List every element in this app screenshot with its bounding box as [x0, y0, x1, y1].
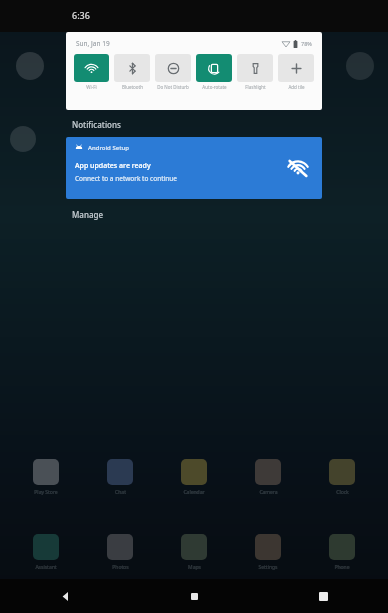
button[interactable]: Recent apps [259, 579, 388, 613]
button[interactable]: Android Setup [66, 137, 322, 199]
button[interactable]: Maps [170, 534, 218, 571]
button[interactable]: Phone [318, 534, 366, 571]
staticText: Assistant [35, 564, 57, 571]
staticText: Phone [334, 564, 350, 571]
button[interactable]: Chat [96, 459, 144, 496]
button[interactable]: Bluetooth [114, 54, 150, 90]
staticText: Chat [115, 489, 126, 496]
button[interactable]: Home [130, 579, 259, 613]
button[interactable]: Flashlight [237, 54, 273, 90]
staticText: Bluetooth [122, 84, 143, 90]
staticText: Calendar [183, 489, 205, 496]
staticText: Notifications [72, 119, 121, 130]
staticText: App updates are ready [75, 161, 151, 171]
staticText: Wi-Fi [86, 84, 97, 90]
staticText: Add tile [288, 84, 305, 90]
button[interactable]: Camera [244, 459, 292, 496]
staticText: Auto-rotate [202, 84, 227, 90]
staticText: Clock [336, 489, 349, 496]
staticText: Do Not Disturb [157, 84, 189, 90]
staticText: Flashlight [245, 84, 266, 90]
staticText: Maps [188, 564, 201, 571]
button[interactable]: Settings [244, 534, 292, 571]
staticText: Settings [258, 564, 278, 571]
button[interactable]: Back [0, 579, 130, 613]
button[interactable]: Do Not Disturb [155, 54, 191, 90]
button[interactable]: Photos [96, 534, 144, 571]
staticText: 6:36 [72, 9, 90, 21]
staticText: Play Store [34, 489, 58, 496]
button[interactable]: Clock [318, 459, 366, 496]
staticText: Photos [112, 564, 129, 571]
staticText: 78% [301, 40, 312, 47]
button[interactable]: Assistant [22, 534, 70, 571]
button[interactable]: Add tile [278, 54, 314, 90]
staticText: Android Setup [88, 144, 129, 152]
button[interactable]: Wi-Fi [74, 54, 109, 90]
staticText: Sun, Jan 19 [76, 39, 110, 48]
button[interactable]: Manage [72, 209, 104, 220]
button[interactable]: Calendar [170, 459, 218, 496]
staticText: Camera [259, 489, 278, 496]
staticText: Connect to a network to continue [75, 174, 177, 183]
button[interactable]: Auto rotate [196, 54, 232, 90]
button[interactable]: Play Store [22, 459, 70, 496]
